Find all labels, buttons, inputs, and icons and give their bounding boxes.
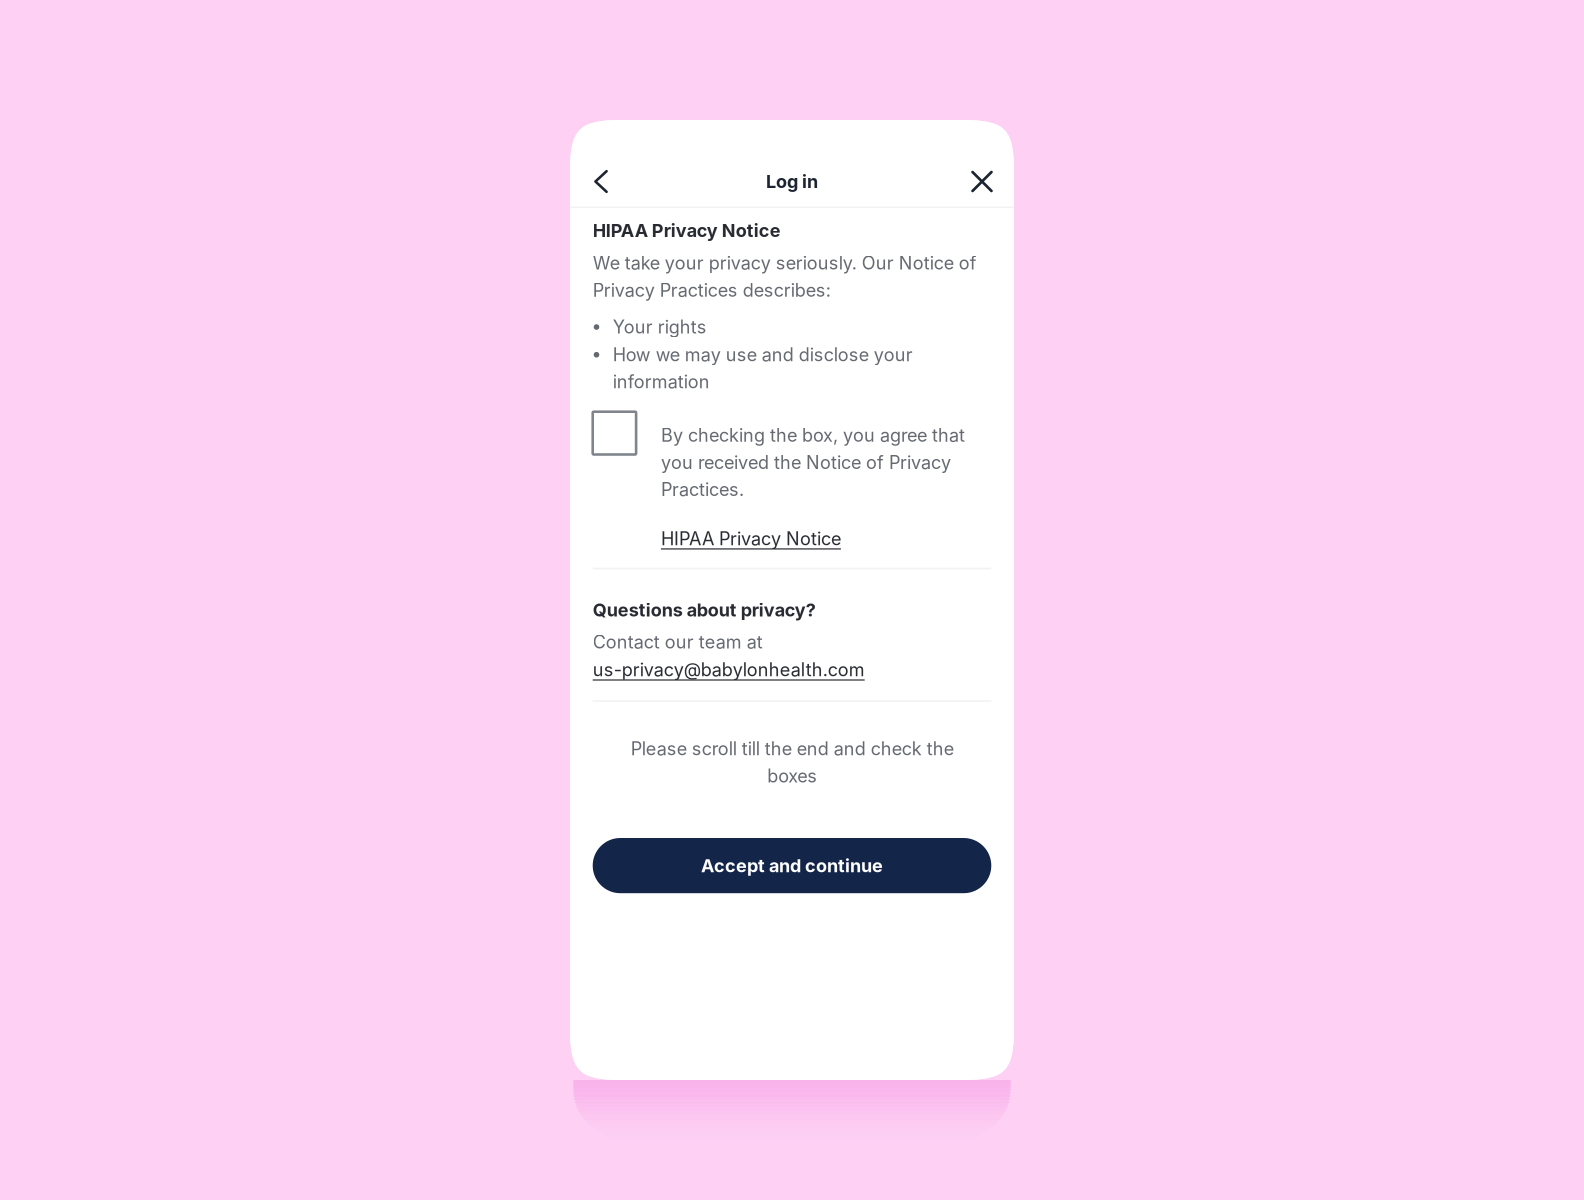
button[interactable]: I received the Notice of Privacy Practic… (593, 412, 636, 454)
staticText: Contact our team at (593, 631, 763, 653)
staticText: Accept and continue (701, 855, 883, 876)
button[interactable]: Accept and continue (593, 838, 991, 893)
staticText: HIPAA Privacy Notice (593, 220, 781, 241)
button[interactable]: Back (578, 158, 624, 204)
staticText: Please scroll till the end and check the… (630, 738, 953, 787)
button[interactable]: Close (959, 158, 1005, 204)
staticText: By checking the box, you agree that you … (661, 424, 965, 500)
staticText: HIPAA Privacy Notice (661, 528, 841, 550)
staticText: Questions about privacy? (593, 599, 816, 621)
button[interactable]: us-privacy@babylonhealth.com (593, 653, 991, 681)
button[interactable]: HIPAA Privacy Notice (661, 500, 991, 550)
staticText: Log in (766, 171, 818, 192)
staticText: us-privacy@babylonhealth.com (593, 659, 865, 681)
staticText: How we may use and disclose your informa… (613, 344, 913, 393)
staticText: We take your privacy seriously. Our Noti… (593, 252, 977, 301)
staticText: Your rights (613, 316, 707, 338)
